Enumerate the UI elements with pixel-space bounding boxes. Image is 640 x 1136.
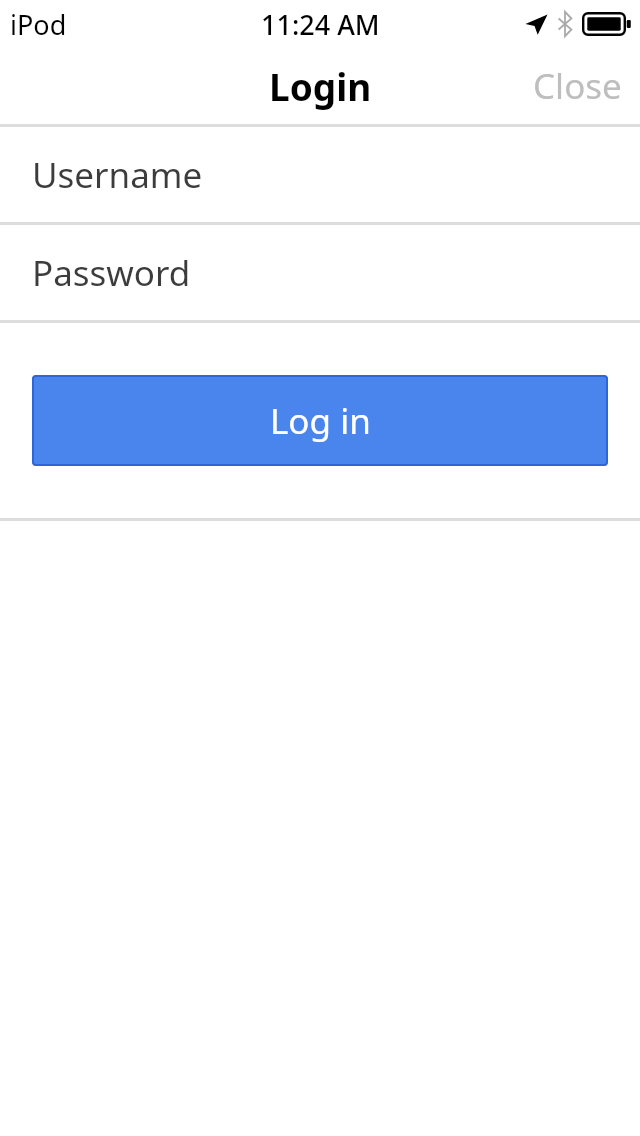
- staticText: Close: [533, 62, 622, 110]
- button[interactable]: Username: [0, 127, 640, 222]
- staticText: 11:24 AM: [261, 6, 380, 43]
- button[interactable]: Password: [0, 225, 640, 320]
- staticText: iPod: [10, 6, 67, 43]
- staticText: Password: [32, 249, 191, 297]
- button[interactable]: Log in: [32, 375, 608, 466]
- staticText: Login: [269, 61, 372, 111]
- staticText: Username: [32, 151, 203, 199]
- button[interactable]: Close: [515, 50, 640, 122]
- staticText: Log in: [270, 397, 371, 445]
